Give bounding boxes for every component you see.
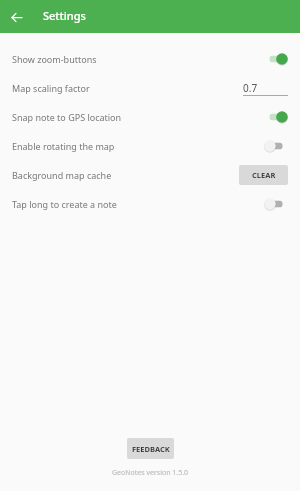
button[interactable]: Show zoom-buttons (0, 44, 300, 73)
button[interactable]: Tap long to create a note (0, 189, 300, 218)
staticText: Snap note to GPS location (12, 111, 122, 123)
button[interactable]: Toggle off (264, 138, 288, 154)
staticText: Background map cache (12, 169, 112, 181)
button[interactable]: Enable rotating the map (0, 131, 300, 160)
staticText: Show zoom-buttons (12, 53, 97, 65)
button[interactable]: FEEDBACK (127, 438, 174, 459)
button[interactable]: Toggle off (264, 196, 288, 212)
staticText: Enable rotating the map (12, 140, 115, 152)
staticText: 0.7 (243, 81, 258, 95)
button[interactable]: Map scaling factor (0, 73, 300, 102)
staticText: FEEDBACK (132, 444, 170, 454)
button[interactable]: Toggle on (264, 109, 288, 125)
staticText: GeoNotes version 1.5.0 (0, 468, 300, 478)
button[interactable]: Background map cache (0, 160, 300, 189)
button[interactable]: Back (0, 0, 33, 33)
button[interactable]: 0.7 (243, 73, 288, 102)
staticText: CLEAR (252, 170, 276, 180)
button[interactable]: Toggle on (264, 51, 288, 67)
button[interactable]: CLEAR (239, 165, 288, 185)
staticText: Settings (43, 8, 86, 23)
staticText: Tap long to create a note (12, 198, 117, 210)
staticText: Map scaling factor (12, 82, 90, 94)
button[interactable]: Snap note to GPS location (0, 102, 300, 131)
